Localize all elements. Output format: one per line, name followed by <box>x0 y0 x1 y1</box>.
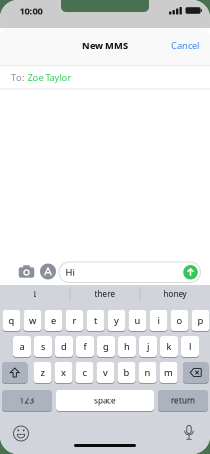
staticText: Zoe Taylor <box>27 71 71 83</box>
button[interactable]: To: <box>0 66 210 89</box>
staticText: k <box>166 340 171 353</box>
button[interactable]: a <box>13 336 31 357</box>
button[interactable]: Send <box>183 265 198 279</box>
staticText: To: <box>11 71 25 83</box>
button[interactable]: k <box>160 336 178 357</box>
staticText: honey <box>163 289 186 299</box>
staticText: p <box>197 314 203 327</box>
staticText: c <box>82 366 86 379</box>
button[interactable]: space <box>56 390 154 411</box>
button[interactable]: z <box>33 362 51 383</box>
staticText: Cancel <box>171 39 199 52</box>
button[interactable]: Emoji <box>13 426 28 441</box>
staticText: x <box>61 366 66 379</box>
button[interactable]: o <box>170 310 188 331</box>
button[interactable]: y <box>107 310 125 331</box>
button[interactable]: Camera <box>19 265 34 278</box>
button[interactable]: 123 <box>2 390 52 411</box>
button[interactable]: Cancel <box>165 35 205 55</box>
staticText: v <box>103 366 108 379</box>
button[interactable]: h <box>118 336 136 357</box>
staticText: b <box>123 366 129 379</box>
button[interactable]: u <box>128 310 146 331</box>
staticText: there <box>94 289 115 299</box>
button[interactable]: q <box>2 310 20 331</box>
staticText: u <box>134 314 140 327</box>
staticText: m <box>164 366 173 379</box>
staticText: 10:00 <box>19 5 42 17</box>
button[interactable]: f <box>76 336 94 357</box>
button[interactable]: Shift <box>2 362 27 383</box>
staticText: j <box>147 340 149 353</box>
button[interactable]: Delete <box>183 362 208 383</box>
staticText: s <box>41 340 45 353</box>
button[interactable]: there <box>72 285 138 303</box>
button[interactable]: r <box>65 310 83 331</box>
staticText: space <box>94 395 116 406</box>
staticText: y <box>114 314 119 327</box>
button[interactable]: v <box>96 362 114 383</box>
button[interactable]: honey <box>142 285 208 303</box>
button[interactable]: s <box>34 336 52 357</box>
staticText: g <box>103 340 109 353</box>
button[interactable]: c <box>75 362 93 383</box>
button[interactable]: g <box>97 336 115 357</box>
staticText: t <box>94 314 97 327</box>
button[interactable]: i <box>149 310 167 331</box>
staticText: New MMS <box>82 39 128 52</box>
staticText: e <box>51 314 56 327</box>
staticText: i <box>157 314 159 327</box>
button[interactable]: e <box>44 310 62 331</box>
button[interactable]: t <box>86 310 104 331</box>
staticText: f <box>83 340 86 353</box>
button[interactable]: p <box>191 310 209 331</box>
staticText: z <box>40 366 44 379</box>
button[interactable]: n <box>138 362 156 383</box>
staticText: h <box>124 340 130 353</box>
button[interactable]: x <box>54 362 72 383</box>
staticText: d <box>61 340 67 353</box>
button[interactable]: l <box>181 336 199 357</box>
button[interactable]: return <box>158 390 208 411</box>
staticText: 123 <box>19 395 34 406</box>
button[interactable]: b <box>117 362 135 383</box>
staticText: r <box>72 314 76 327</box>
button[interactable]: Hi <box>59 262 200 282</box>
button[interactable]: w <box>23 310 41 331</box>
staticText: I <box>33 289 36 299</box>
staticText: o <box>176 314 182 327</box>
button[interactable]: Dictation <box>184 425 194 440</box>
button[interactable]: I <box>2 285 68 303</box>
button[interactable]: m <box>159 362 177 383</box>
staticText: a <box>19 340 24 353</box>
staticText: l <box>189 340 191 353</box>
staticText: n <box>144 366 150 379</box>
button[interactable]: d <box>55 336 73 357</box>
staticText: Hi <box>65 266 74 278</box>
staticText: return <box>171 395 195 406</box>
staticText: q <box>8 314 14 327</box>
staticText: w <box>29 314 36 327</box>
button[interactable]: Apps <box>40 263 56 279</box>
button[interactable]: j <box>139 336 157 357</box>
